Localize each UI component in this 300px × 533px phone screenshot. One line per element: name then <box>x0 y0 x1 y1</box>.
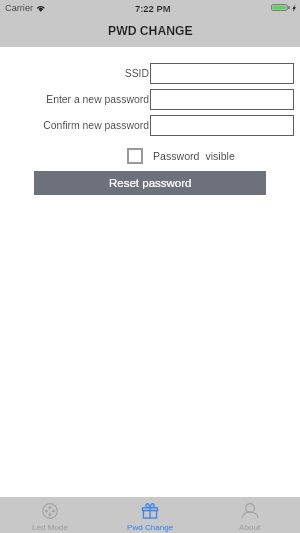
staticText: Enter a new password <box>0 94 149 106</box>
staticText: 7:22 PM <box>135 3 171 14</box>
staticText: Confirm new password <box>0 120 149 132</box>
button[interactable]: About <box>200 497 300 533</box>
staticText: SSID <box>0 68 149 80</box>
staticText: PWD CHANGE <box>108 24 193 38</box>
button[interactable]: Pwd Change <box>100 497 200 533</box>
button[interactable]: Password visible <box>127 148 235 164</box>
button[interactable]: Reset password <box>34 171 266 195</box>
button[interactable]: Led Mode <box>0 497 100 533</box>
button[interactable]: Confirm new password <box>150 115 294 136</box>
button[interactable]: SSID <box>150 63 294 84</box>
staticText: Password visible <box>153 150 235 162</box>
button[interactable]: Enter a new password <box>150 89 294 110</box>
staticText: Pwd Change <box>127 523 174 532</box>
staticText: Carrier <box>5 3 34 13</box>
staticText: Reset password <box>109 177 192 190</box>
staticText: About <box>239 523 261 532</box>
staticText: Led Mode <box>32 523 68 532</box>
